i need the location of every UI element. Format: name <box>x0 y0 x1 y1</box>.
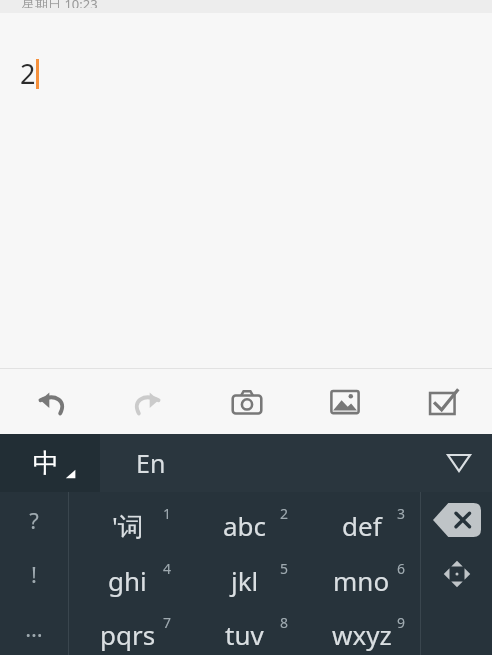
staticText: 1 <box>163 504 172 523</box>
staticText: En <box>136 446 166 480</box>
button[interactable]: 3 <box>303 492 420 547</box>
staticText: ! <box>31 559 37 589</box>
staticText: 7 <box>163 613 172 632</box>
staticText: '词 <box>112 508 144 544</box>
staticText: wxyz <box>332 617 392 652</box>
staticText: def <box>342 508 382 543</box>
staticText: 4 <box>163 559 172 578</box>
button[interactable]: ! <box>0 547 68 601</box>
staticText: pqrs <box>100 617 156 652</box>
button[interactable]: 2 <box>186 492 303 547</box>
staticText: 8 <box>280 613 289 632</box>
button[interactable]: 1 <box>69 492 186 547</box>
staticText: … <box>25 613 43 643</box>
button[interactable]: En <box>100 434 492 492</box>
button[interactable]: ? <box>0 492 68 547</box>
staticText: 9 <box>397 613 406 632</box>
staticText: 2 <box>280 504 289 523</box>
button[interactable]: 9 <box>303 601 420 655</box>
staticText: ? <box>29 505 39 535</box>
staticText: 2 <box>20 55 36 92</box>
staticText: abc <box>223 508 267 543</box>
button[interactable]: 5 <box>186 547 303 601</box>
staticText: ghi <box>108 563 147 598</box>
staticText: mno <box>333 563 390 598</box>
button[interactable]: 8 <box>186 601 303 655</box>
button[interactable]: 7 <box>69 601 186 655</box>
button[interactable]: Undo <box>0 369 99 434</box>
staticText: 6 <box>397 559 406 578</box>
button[interactable]: Move cursor <box>421 547 492 601</box>
button[interactable]: 4 <box>69 547 186 601</box>
staticText: 星期日 10:23 <box>22 0 98 8</box>
button[interactable]: Insert image <box>296 369 394 434</box>
button[interactable]: Camera <box>198 369 296 434</box>
staticText: jkl <box>231 563 259 598</box>
staticText: tuv <box>225 617 264 652</box>
button[interactable]: Switch to Chinese <box>0 434 100 492</box>
button[interactable]: Redo <box>99 369 198 434</box>
button[interactable]: 6 <box>303 547 420 601</box>
button[interactable]: Checklist <box>394 369 492 434</box>
staticText: 中 <box>33 447 59 480</box>
staticText: 3 <box>397 504 406 523</box>
button[interactable]: … <box>0 601 68 655</box>
button[interactable]: Backspace <box>421 492 492 547</box>
staticText: 5 <box>280 559 289 578</box>
